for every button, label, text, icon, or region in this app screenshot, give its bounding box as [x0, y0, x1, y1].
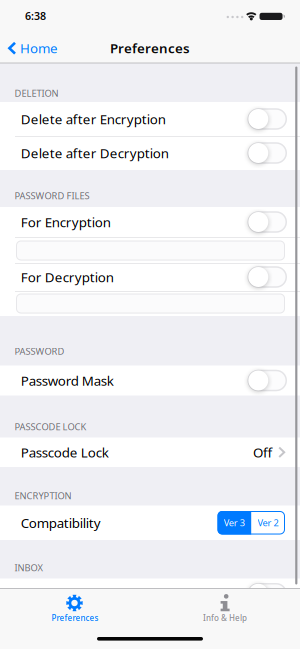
staticText: Ver 3	[224, 517, 245, 529]
staticText: Preferences	[110, 39, 190, 57]
button[interactable]: Password Mask	[247, 370, 287, 391]
staticText: INBOX	[14, 561, 42, 574]
button[interactable]: Inbox	[247, 583, 287, 604]
staticText: Passcode Lock	[21, 443, 109, 461]
staticText: Home	[20, 39, 58, 57]
staticText: Password Mask	[21, 372, 114, 389]
button[interactable]: Password file for decryption	[16, 293, 285, 313]
staticText: Info & Help	[203, 613, 247, 623]
staticText: For Decryption	[21, 268, 114, 286]
button[interactable]: Password file for encryption	[16, 240, 285, 260]
staticText: PASSCODE LOCK	[14, 420, 86, 433]
button[interactable]: Passcode Lock	[0, 437, 300, 467]
button[interactable]: Ver 2	[251, 511, 285, 534]
staticText: Delete after Encryption	[21, 110, 166, 128]
staticText: PASSWORD FILES	[14, 189, 89, 202]
button[interactable]: Home	[0, 36, 64, 60]
staticText: PASSWORD	[14, 345, 64, 357]
button[interactable]: Delete after Decryption	[247, 142, 287, 164]
staticText: For Encryption	[21, 213, 111, 231]
button[interactable]: For Decryption	[247, 266, 287, 288]
staticText: Off	[253, 443, 272, 461]
staticText: DELETION	[14, 87, 58, 99]
button[interactable]: Delete after Encryption	[247, 108, 287, 130]
staticText: ENCRYPTION	[14, 489, 71, 502]
button[interactable]: Ver 3	[217, 511, 251, 534]
staticText: Compatibility	[21, 514, 101, 532]
staticText: 6:38	[25, 9, 46, 23]
button[interactable]: For Encryption	[247, 211, 287, 233]
staticText: Ver 2	[258, 517, 279, 529]
staticText: Preferences	[51, 613, 98, 623]
button[interactable]: Info & Help	[150, 588, 300, 632]
button[interactable]: Preferences	[0, 588, 150, 632]
staticText: Delete after Decryption	[21, 144, 169, 162]
